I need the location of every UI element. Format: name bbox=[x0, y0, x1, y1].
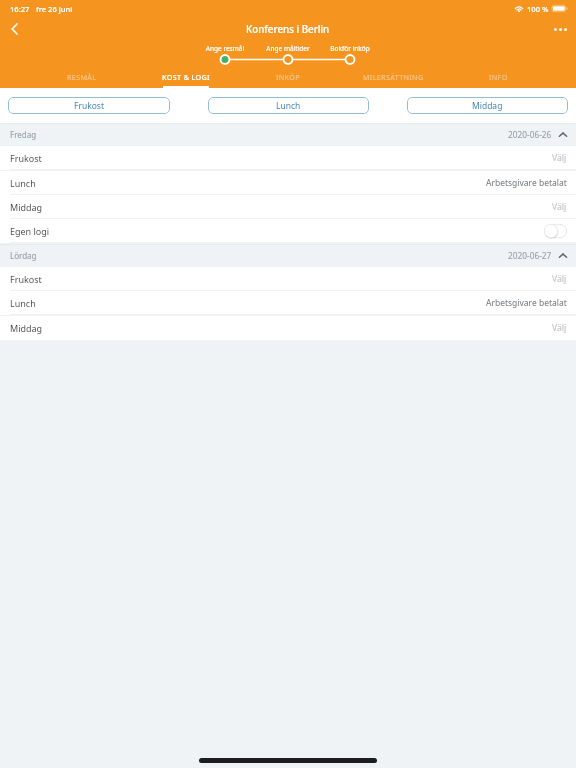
button[interactable]: More options bbox=[544, 16, 576, 42]
button[interactable]: INFO bbox=[448, 66, 548, 88]
staticText: Lunch bbox=[10, 297, 36, 309]
button[interactable]: Lördag bbox=[10, 244, 568, 267]
staticText: Lördag bbox=[10, 250, 37, 261]
button[interactable]: Middag bbox=[0, 316, 576, 340]
staticText: INFO bbox=[489, 72, 508, 82]
staticText: RESMÅL bbox=[67, 72, 97, 82]
staticText: INKÖP bbox=[276, 72, 300, 82]
staticText: Frukost bbox=[74, 100, 104, 112]
staticText: Egen logi bbox=[10, 225, 50, 237]
staticText: Bokför inköp bbox=[305, 44, 395, 53]
staticText: KOST & LOGI bbox=[162, 72, 211, 82]
button[interactable]: Back bbox=[0, 16, 30, 42]
staticText: Fredag bbox=[10, 129, 37, 140]
button[interactable]: KOST & LOGI bbox=[126, 66, 246, 88]
button[interactable]: Fredag bbox=[10, 123, 568, 146]
button[interactable]: Egen logi bbox=[0, 219, 576, 243]
staticText: Ange måltider bbox=[243, 44, 333, 53]
staticText: Lunch bbox=[276, 100, 301, 112]
button[interactable]: Egen logi bbox=[544, 224, 567, 238]
button[interactable]: RESMÅL bbox=[32, 66, 132, 88]
staticText: Ange resmål bbox=[180, 44, 270, 53]
button[interactable]: Frukost bbox=[0, 267, 576, 291]
button[interactable]: Lunch bbox=[0, 171, 576, 195]
staticText: Välj bbox=[552, 201, 567, 213]
staticText: Middag bbox=[10, 322, 43, 334]
staticText: Frukost bbox=[10, 273, 42, 285]
button[interactable]: Middag bbox=[407, 97, 568, 114]
button[interactable]: Middag bbox=[0, 195, 576, 219]
staticText: Välj bbox=[552, 322, 567, 334]
staticText: Frukost bbox=[10, 152, 42, 164]
staticText: 2020-06-26 bbox=[508, 129, 552, 140]
button[interactable]: Lunch bbox=[208, 97, 369, 114]
staticText: Middag bbox=[472, 100, 503, 112]
staticText: Välj bbox=[552, 152, 567, 164]
button[interactable]: Lunch bbox=[0, 291, 576, 315]
staticText: Konferens i Berlin bbox=[246, 23, 330, 36]
button[interactable]: Frukost bbox=[0, 146, 576, 170]
button[interactable]: Frukost bbox=[8, 97, 170, 114]
staticText: fre 26 juni bbox=[36, 4, 73, 14]
staticText: Välj bbox=[552, 273, 567, 285]
button[interactable]: INKÖP bbox=[238, 66, 338, 88]
staticText: Lunch bbox=[10, 177, 36, 189]
button[interactable]: MILERSÄTTNING bbox=[338, 66, 448, 88]
staticText: 2020-06-27 bbox=[508, 250, 552, 261]
staticText: 100 % bbox=[527, 4, 549, 14]
staticText: Middag bbox=[10, 201, 43, 213]
staticText: 16:27 bbox=[10, 4, 30, 14]
staticText: Arbetsgivare betalat bbox=[486, 177, 567, 189]
staticText: Arbetsgivare betalat bbox=[486, 297, 567, 309]
staticText: MILERSÄTTNING bbox=[363, 72, 424, 82]
